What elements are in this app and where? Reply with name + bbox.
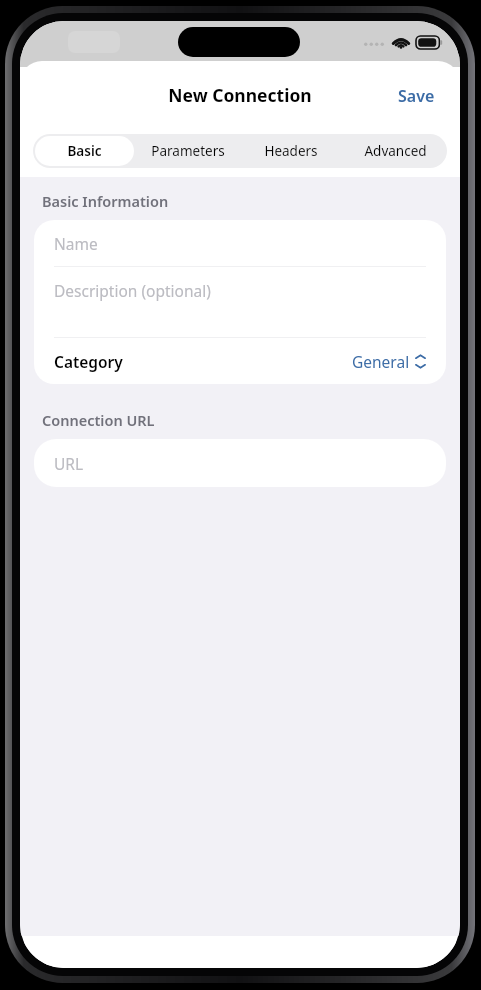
button[interactable]: Headers (239, 134, 343, 168)
button[interactable]: Basic (35, 136, 134, 166)
staticText: Headers (264, 142, 318, 160)
button[interactable]: Save (389, 75, 444, 116)
button[interactable]: Name (34, 220, 446, 266)
staticText: Advanced (364, 142, 427, 160)
staticText: URL (54, 453, 84, 474)
button[interactable]: Advanced (343, 134, 447, 168)
staticText: Basic Information (42, 191, 169, 211)
staticText: Description (optional) (54, 280, 211, 301)
button[interactable]: Category (34, 338, 446, 384)
staticText: General (352, 351, 410, 372)
staticText: Name (54, 233, 98, 254)
button[interactable]: URL (34, 439, 446, 487)
other: Change category (415, 354, 426, 369)
staticText: Connection URL (42, 410, 155, 430)
staticText: Parameters (151, 142, 225, 160)
staticText: New Connection (168, 83, 312, 107)
button[interactable]: Parameters (136, 134, 239, 168)
staticText: Category (54, 351, 123, 372)
staticText: Save (398, 85, 435, 107)
staticText: Basic (67, 142, 102, 160)
button[interactable]: Description (optional) (34, 267, 446, 337)
